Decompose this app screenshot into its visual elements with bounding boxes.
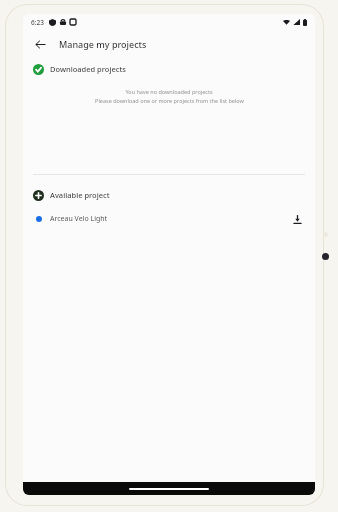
staticText: Available project [50,190,110,200]
staticText: Downloaded projects [50,64,126,74]
button[interactable]: Arceau Velo Light [23,209,315,229]
button[interactable]: Back [29,33,51,55]
button[interactable]: Downloaded projects [23,58,315,80]
staticText: You have no downloaded projects [125,88,213,95]
staticText: Please download one or more projects fro… [95,97,244,104]
staticText: Manage my projects [59,38,147,50]
button[interactable]: Download [289,211,305,227]
staticText: 6:23 [31,18,44,27]
staticText: Arceau Velo Light [50,214,108,224]
button[interactable]: Available project [23,185,315,205]
